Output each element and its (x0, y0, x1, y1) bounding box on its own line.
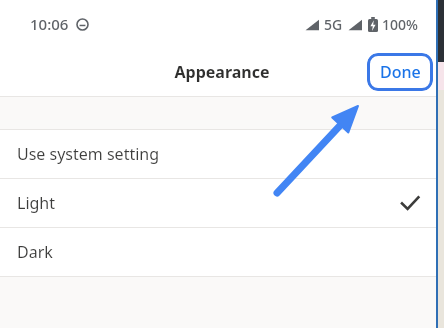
staticText: Dark (17, 241, 53, 263)
button[interactable]: Light (0, 179, 444, 227)
staticText: 5G (324, 15, 343, 34)
staticText: Done (380, 61, 421, 83)
button[interactable]: Dark (0, 228, 444, 276)
staticText: Use system setting (17, 143, 160, 165)
staticText: Light (17, 192, 56, 214)
staticText: 100% (382, 15, 418, 34)
staticText: 10:06 (30, 14, 69, 34)
button[interactable]: Done (367, 53, 433, 91)
staticText: Appearance (174, 61, 270, 83)
button[interactable]: Use system setting (0, 130, 444, 178)
other: Selected (400, 193, 420, 213)
